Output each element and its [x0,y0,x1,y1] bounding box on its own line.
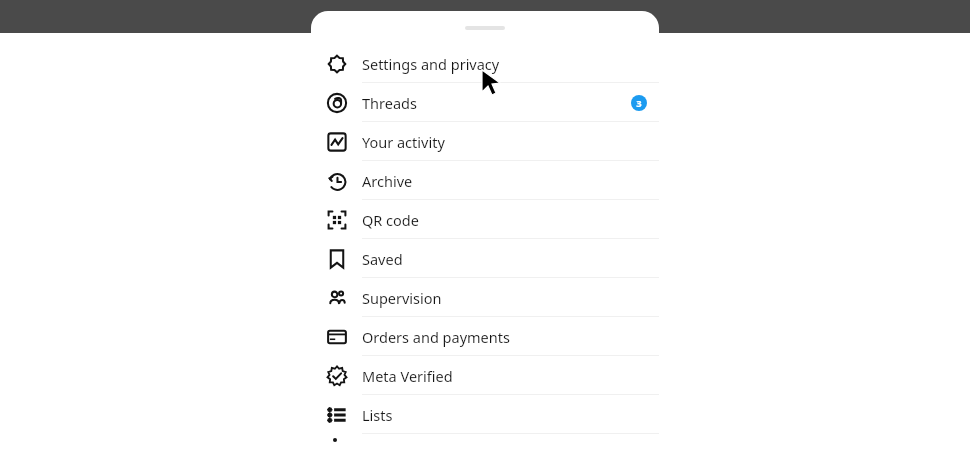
button[interactable]: More options [311,434,659,450]
staticText: Archive [362,171,413,191]
staticText: Saved [362,249,403,269]
button[interactable]: Settings and privacy [311,44,659,83]
staticText: Threads [362,93,417,113]
button[interactable]: Saved [311,239,659,278]
staticText: Your activity [362,132,445,152]
staticText: Lists [362,405,393,425]
button[interactable]: Supervision [311,278,659,317]
button[interactable]: Archive [311,161,659,200]
staticText: QR code [362,210,419,230]
button[interactable]: Threads [311,83,659,122]
button[interactable]: Orders and payments [311,317,659,356]
staticText: Supervision [362,288,442,308]
button[interactable]: Lists [311,395,659,434]
staticText: Orders and payments [362,327,510,347]
staticText: Meta Verified [362,366,453,386]
staticText: 3 [636,97,642,110]
staticText: Settings and privacy [362,54,500,74]
button[interactable]: Your activity [311,122,659,161]
button[interactable]: QR code [311,200,659,239]
button[interactable]: Meta Verified [311,356,659,395]
